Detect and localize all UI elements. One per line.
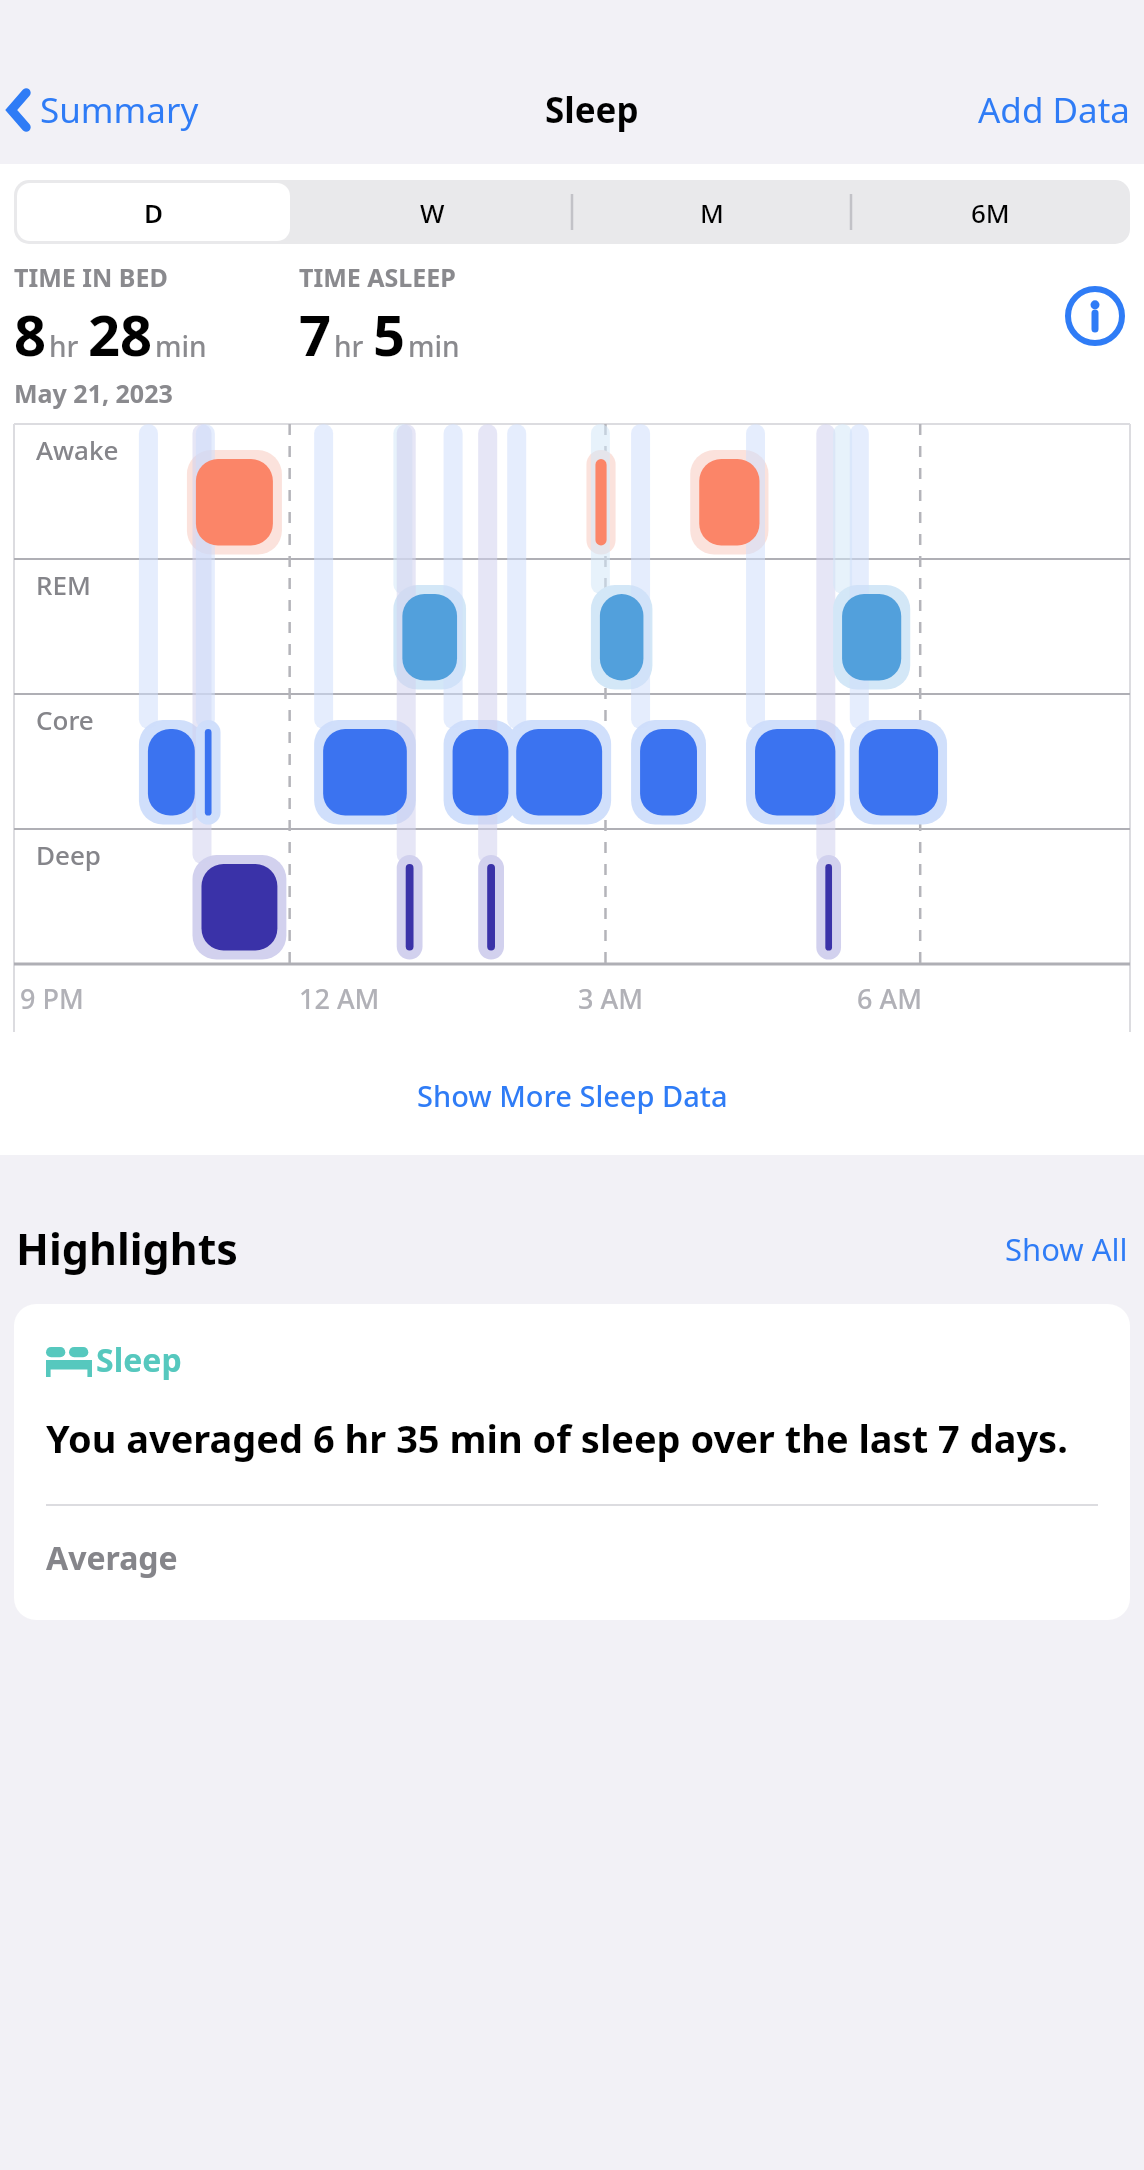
button[interactable]: 6M (851, 180, 1130, 244)
staticText: 6 AM (857, 980, 922, 1017)
staticText: min (155, 327, 207, 365)
staticText: REM (36, 567, 91, 602)
staticText: 6M (971, 195, 1010, 230)
button[interactable]: Summary (0, 80, 207, 140)
button[interactable]: Show All (1005, 1228, 1128, 1270)
staticText: 7 (299, 296, 332, 372)
staticText: D (144, 195, 164, 230)
staticText: Average (46, 1536, 178, 1580)
staticText: 5 (373, 296, 406, 372)
staticText: hr (49, 327, 79, 365)
button[interactable]: Show More Sleep Data (0, 1032, 1144, 1155)
staticText: M (700, 195, 724, 230)
staticText: TIME ASLEEP (299, 260, 456, 294)
button[interactable]: Add Data (978, 80, 1144, 140)
staticText: 28 (88, 296, 153, 372)
staticText: Show More Sleep Data (417, 1076, 728, 1115)
staticText: Add Data (978, 86, 1130, 134)
staticText: Summary (40, 86, 199, 134)
staticText: min (408, 327, 460, 365)
staticText: Show All (1005, 1228, 1128, 1270)
staticText: TIME IN BED (14, 260, 168, 294)
staticText: Highlights (16, 1219, 238, 1278)
staticText: Sleep (96, 1338, 182, 1382)
staticText: hr (334, 327, 364, 365)
button[interactable]: M (572, 180, 851, 244)
staticText: You averaged 6 hr 35 min of sleep over t… (46, 1412, 1068, 1464)
button[interactable]: Sleep (14, 1304, 1130, 1620)
staticText: 3 AM (578, 980, 643, 1017)
button[interactable]: W (293, 180, 572, 244)
staticText: May 21, 2023 (14, 376, 173, 410)
button[interactable]: D (14, 180, 293, 244)
staticText: Awake (36, 432, 119, 467)
staticText: Core (36, 702, 94, 737)
staticText: Deep (36, 837, 101, 872)
button[interactable]: Information about sleep data (1064, 285, 1126, 347)
staticText: W (420, 195, 445, 230)
staticText: 12 AM (299, 980, 380, 1017)
staticText: Sleep (545, 86, 639, 134)
staticText: 8 (14, 296, 47, 372)
staticText: 9 PM (20, 980, 84, 1017)
